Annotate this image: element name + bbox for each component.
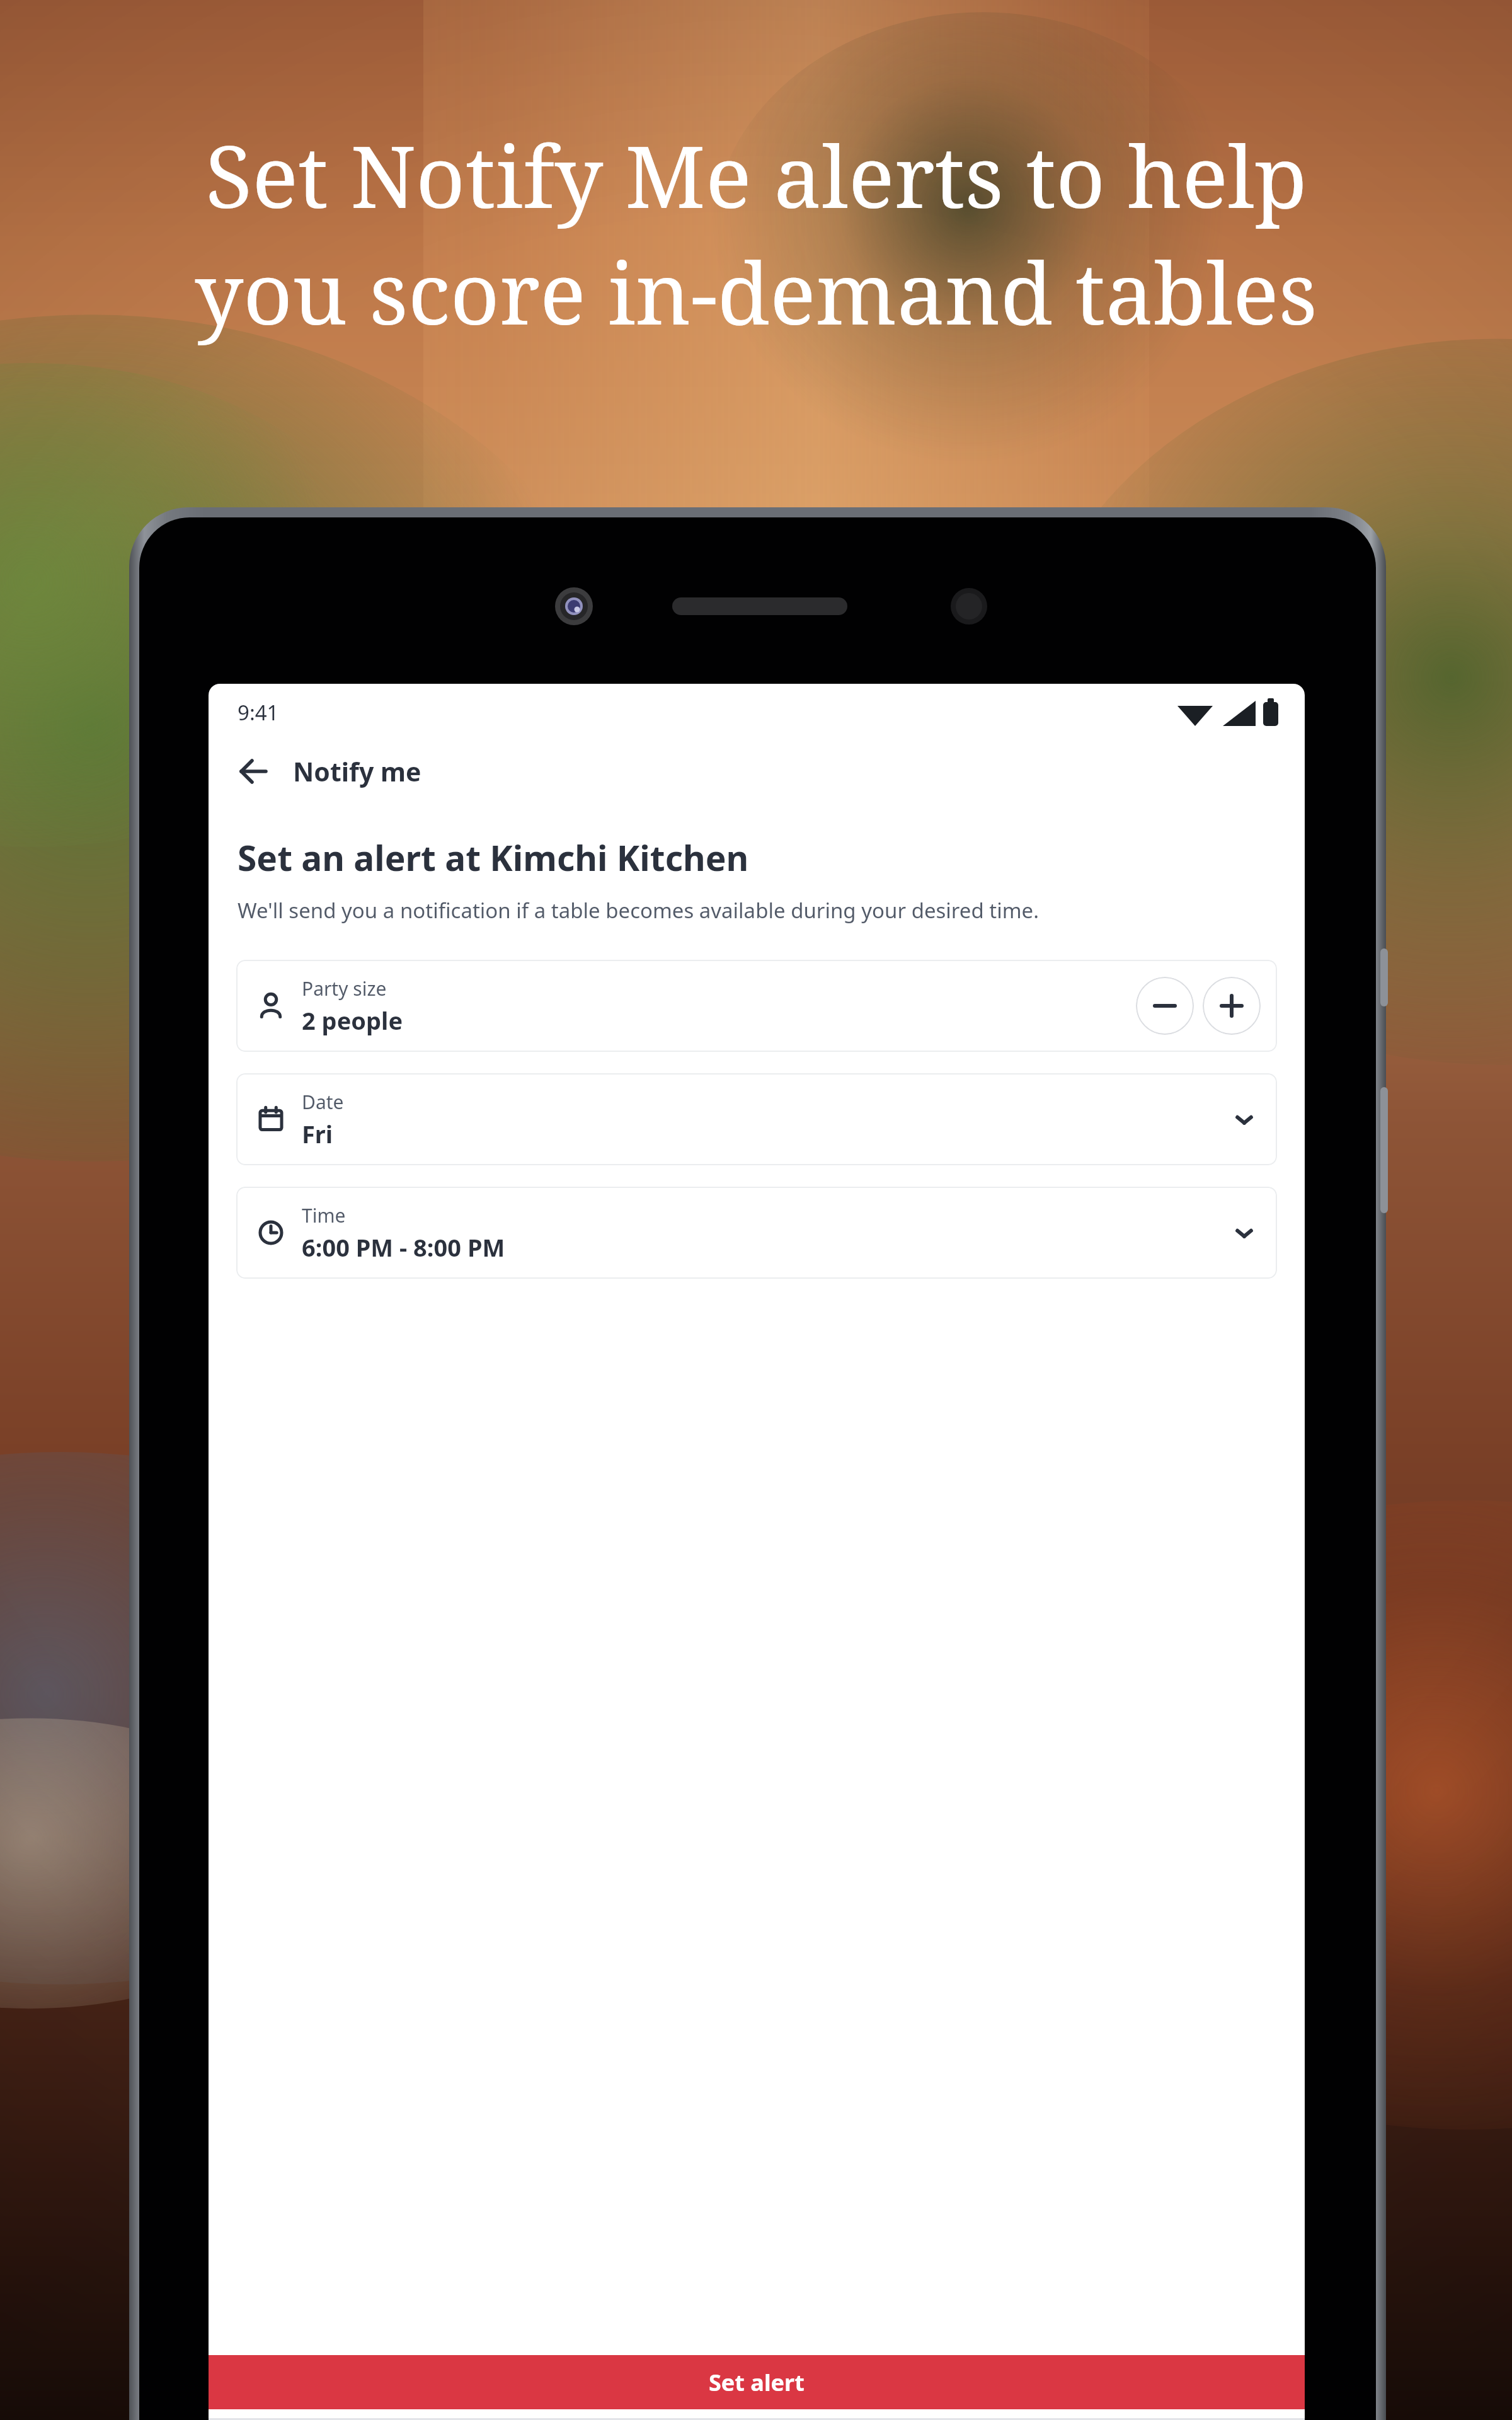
button[interactable]: Back — [230, 748, 277, 795]
staticText: Set alert — [709, 2367, 805, 2398]
button[interactable]: Increase party size — [1203, 977, 1261, 1035]
button[interactable]: Party size — [236, 960, 1277, 1052]
staticText: Time — [302, 1202, 346, 1228]
staticText: Set an alert at Kimchi Kitchen — [238, 834, 749, 881]
staticText: 9:41 — [238, 698, 279, 727]
staticText: Fri — [302, 1117, 333, 1150]
staticText: Date — [302, 1089, 344, 1115]
button[interactable]: Date — [236, 1073, 1277, 1165]
button[interactable]: Set alert — [209, 2355, 1305, 2409]
staticText: 2 people — [302, 1004, 403, 1037]
staticText: We'll send you a notification if a table… — [238, 896, 1039, 925]
staticText: 6:00 PM - 8:00 PM — [302, 1231, 505, 1264]
staticText: Set Notify Me alerts to help — [205, 117, 1307, 233]
button[interactable]: Time — [236, 1187, 1277, 1279]
button[interactable]: Decrease party size — [1136, 977, 1194, 1035]
staticText: Notify me — [293, 754, 421, 789]
staticText: Party size — [302, 976, 387, 1001]
staticText: you score in-demand tables — [195, 233, 1317, 350]
